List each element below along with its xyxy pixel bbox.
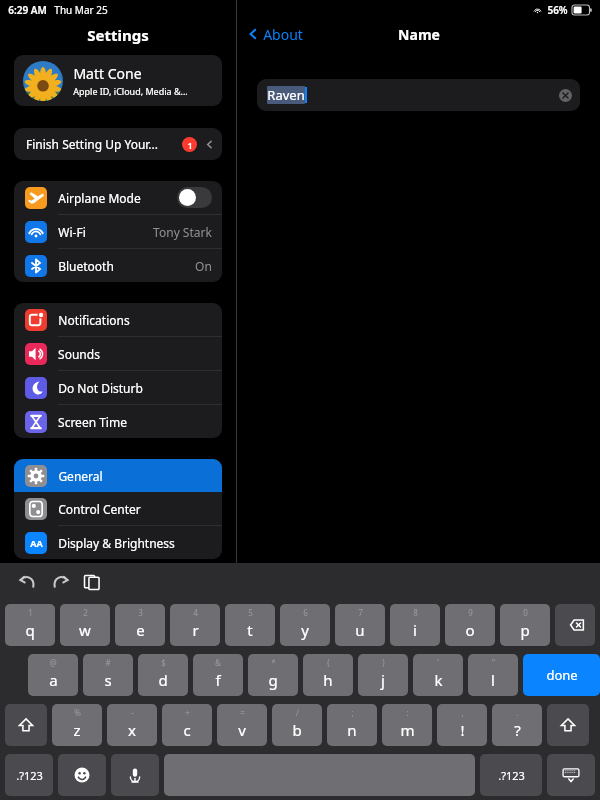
button[interactable]: 4 [170,604,220,646]
button[interactable]: Hide keyboard [547,754,595,796]
button[interactable]: Do Not Disturb [14,371,222,404]
button[interactable]: Sounds [14,337,222,370]
button[interactable]: .?123 [5,754,53,796]
button[interactable]: Clear text [559,89,572,102]
staticText: r [192,620,199,640]
staticText: ? [514,720,521,740]
staticText: 9 [468,607,473,618]
button[interactable]: Shift [5,704,47,746]
button[interactable]: ( [303,654,353,696]
button[interactable]: Dictation [111,754,159,796]
staticText: .?123 [498,768,525,783]
button[interactable]: ) [358,654,408,696]
button[interactable]: = [217,704,267,746]
button[interactable]: Finish Setting Up Your... [14,128,222,160]
staticText: v [238,720,246,740]
staticText: 4 [193,607,198,618]
staticText: 8 [413,607,418,618]
button[interactable]: + [162,704,212,746]
staticText: “ [492,657,495,668]
staticText: m [400,720,415,740]
staticText: On [195,258,212,274]
button[interactable]: 8 [390,604,440,646]
staticText: - [131,707,134,718]
button[interactable]: 5 [225,604,275,646]
button[interactable]: About [247,16,303,52]
staticText: % [74,707,81,718]
staticText: i [413,620,417,640]
button[interactable]: & [193,654,243,696]
staticText: . [516,707,519,718]
staticText: General [58,468,103,484]
button[interactable]: : [382,704,432,746]
button[interactable]: . [492,704,542,746]
staticText: AA [30,537,43,549]
button[interactable]: 2 [60,604,110,646]
button[interactable]: Matt Cone [14,55,222,106]
staticText: 1 [187,139,193,151]
button[interactable]: Notifications [14,303,222,336]
button[interactable]: .?123 [480,754,542,796]
button[interactable]: ‘ [413,654,463,696]
staticText: done [546,666,578,684]
staticText: 3 [138,607,143,618]
button[interactable]: General [14,459,222,492]
staticText: Matt Cone [73,64,142,83]
staticText: w [79,620,91,640]
button[interactable]: “ [468,654,518,696]
button[interactable]: Wi-Fi [14,215,222,248]
button[interactable] [177,187,212,208]
staticText: $ [161,657,166,668]
staticText: f [215,670,221,690]
staticText: b [292,720,302,740]
button[interactable]: % [52,704,102,746]
staticText: y [301,620,309,640]
staticText: p [520,620,530,640]
staticText: / [296,707,299,718]
button[interactable]: Screen Time [14,405,222,438]
staticText: Screen Time [58,414,127,430]
staticText: Wi-Fi [58,224,86,240]
button[interactable]: Raven [257,79,580,111]
button[interactable]: - [107,704,157,746]
staticText: 1 [28,607,33,618]
button[interactable]: Bluetooth [14,249,222,282]
button[interactable]: 1 [5,604,55,646]
button[interactable]: 6 [280,604,330,646]
button[interactable]: @ [28,654,78,696]
button[interactable]: Emoji [58,754,106,796]
button[interactable]: 3 [115,604,165,646]
staticText: Raven [267,86,305,104]
staticText: @ [49,657,57,668]
staticText: j [381,670,385,690]
button[interactable]: Paste [81,571,103,593]
button[interactable]: 9 [445,604,495,646]
staticText: + [185,707,190,718]
button[interactable]: # [83,654,133,696]
staticText: ( [327,657,330,668]
button[interactable]: * [248,654,298,696]
button[interactable]: done [523,654,600,696]
button[interactable]: Control Center [14,492,222,525]
button[interactable]: $ [138,654,188,696]
button[interactable]: Undo [16,570,40,594]
button[interactable]: AA [14,526,222,559]
staticText: : [406,707,409,718]
button[interactable]: / [272,704,322,746]
button[interactable]: Backspace [555,604,595,646]
button[interactable]: , [437,704,487,746]
staticText: About [263,25,303,44]
button[interactable]: 0 [500,604,550,646]
staticText: .?123 [16,768,43,783]
button[interactable]: Shift [547,704,589,746]
staticText: a [49,670,58,690]
button[interactable]: ; [327,704,377,746]
staticText: Sounds [58,346,100,362]
button[interactable]: Redo [48,570,72,594]
staticText: k [434,670,443,690]
staticText: Do Not Disturb [58,380,143,396]
staticText: Name [398,25,440,44]
button[interactable]: 7 [335,604,385,646]
button[interactable]: Airplane Mode [14,181,222,214]
